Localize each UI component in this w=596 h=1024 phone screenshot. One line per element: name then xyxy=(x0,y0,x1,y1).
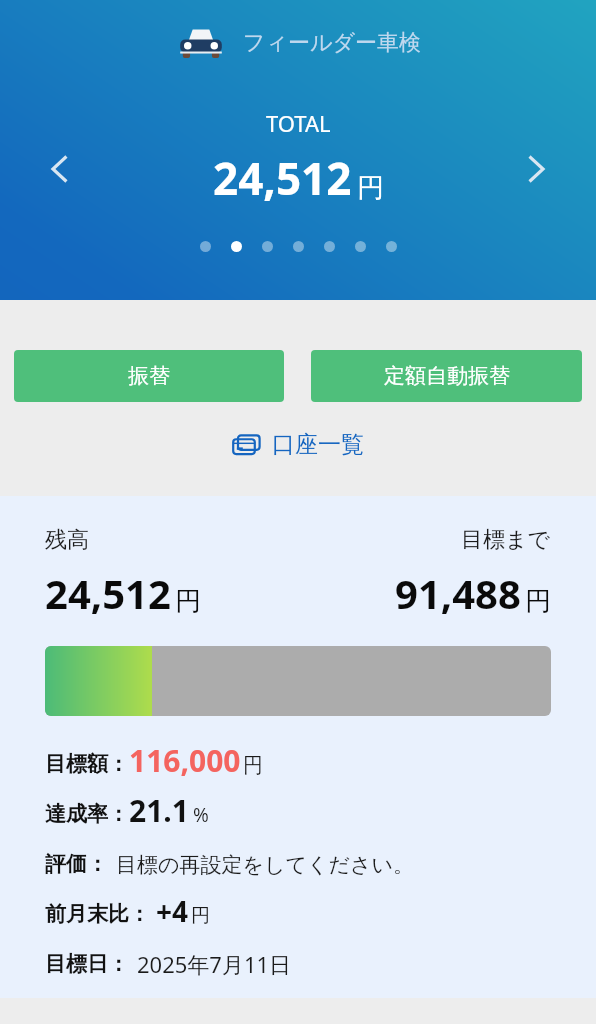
staticText: 目標額： xyxy=(45,751,129,777)
staticText: フィールダー車検 xyxy=(243,29,422,57)
button[interactable]: 口座一覧 xyxy=(0,430,596,459)
staticText: 2025年7月11日 xyxy=(137,949,292,979)
staticText: 前月末比： xyxy=(45,901,150,927)
staticText: 116,000 xyxy=(129,740,241,780)
staticText: 円 xyxy=(357,171,384,205)
staticText: 目標まで xyxy=(461,526,551,554)
staticText: 24,512 xyxy=(45,566,171,620)
staticText: 定額自動振替 xyxy=(384,363,510,389)
staticText: 評価： xyxy=(45,851,108,877)
staticText: 残高 xyxy=(45,526,89,554)
staticText: % xyxy=(193,802,209,828)
staticText: +4 xyxy=(156,892,189,930)
staticText: TOTAL xyxy=(266,108,331,138)
button[interactable]: Previous xyxy=(38,147,82,191)
staticText: 目標の再設定をしてください。 xyxy=(116,852,414,878)
staticText: 円 xyxy=(243,753,263,778)
staticText: 円 xyxy=(175,585,201,618)
button[interactable]: 定額自動振替 xyxy=(311,350,582,402)
staticText: 目標日： xyxy=(45,951,129,977)
button[interactable]: Next xyxy=(514,147,558,191)
staticText: 振替 xyxy=(128,363,170,389)
staticText: 円 xyxy=(525,585,551,618)
staticText: 円 xyxy=(191,904,210,928)
staticText: 21.1 xyxy=(129,790,189,830)
staticText: 24,512 xyxy=(213,148,352,208)
staticText: 91,488 xyxy=(395,566,521,620)
staticText: 口座一覧 xyxy=(272,430,364,459)
button[interactable]: 振替 xyxy=(14,350,284,402)
staticText: 達成率： xyxy=(45,801,129,827)
